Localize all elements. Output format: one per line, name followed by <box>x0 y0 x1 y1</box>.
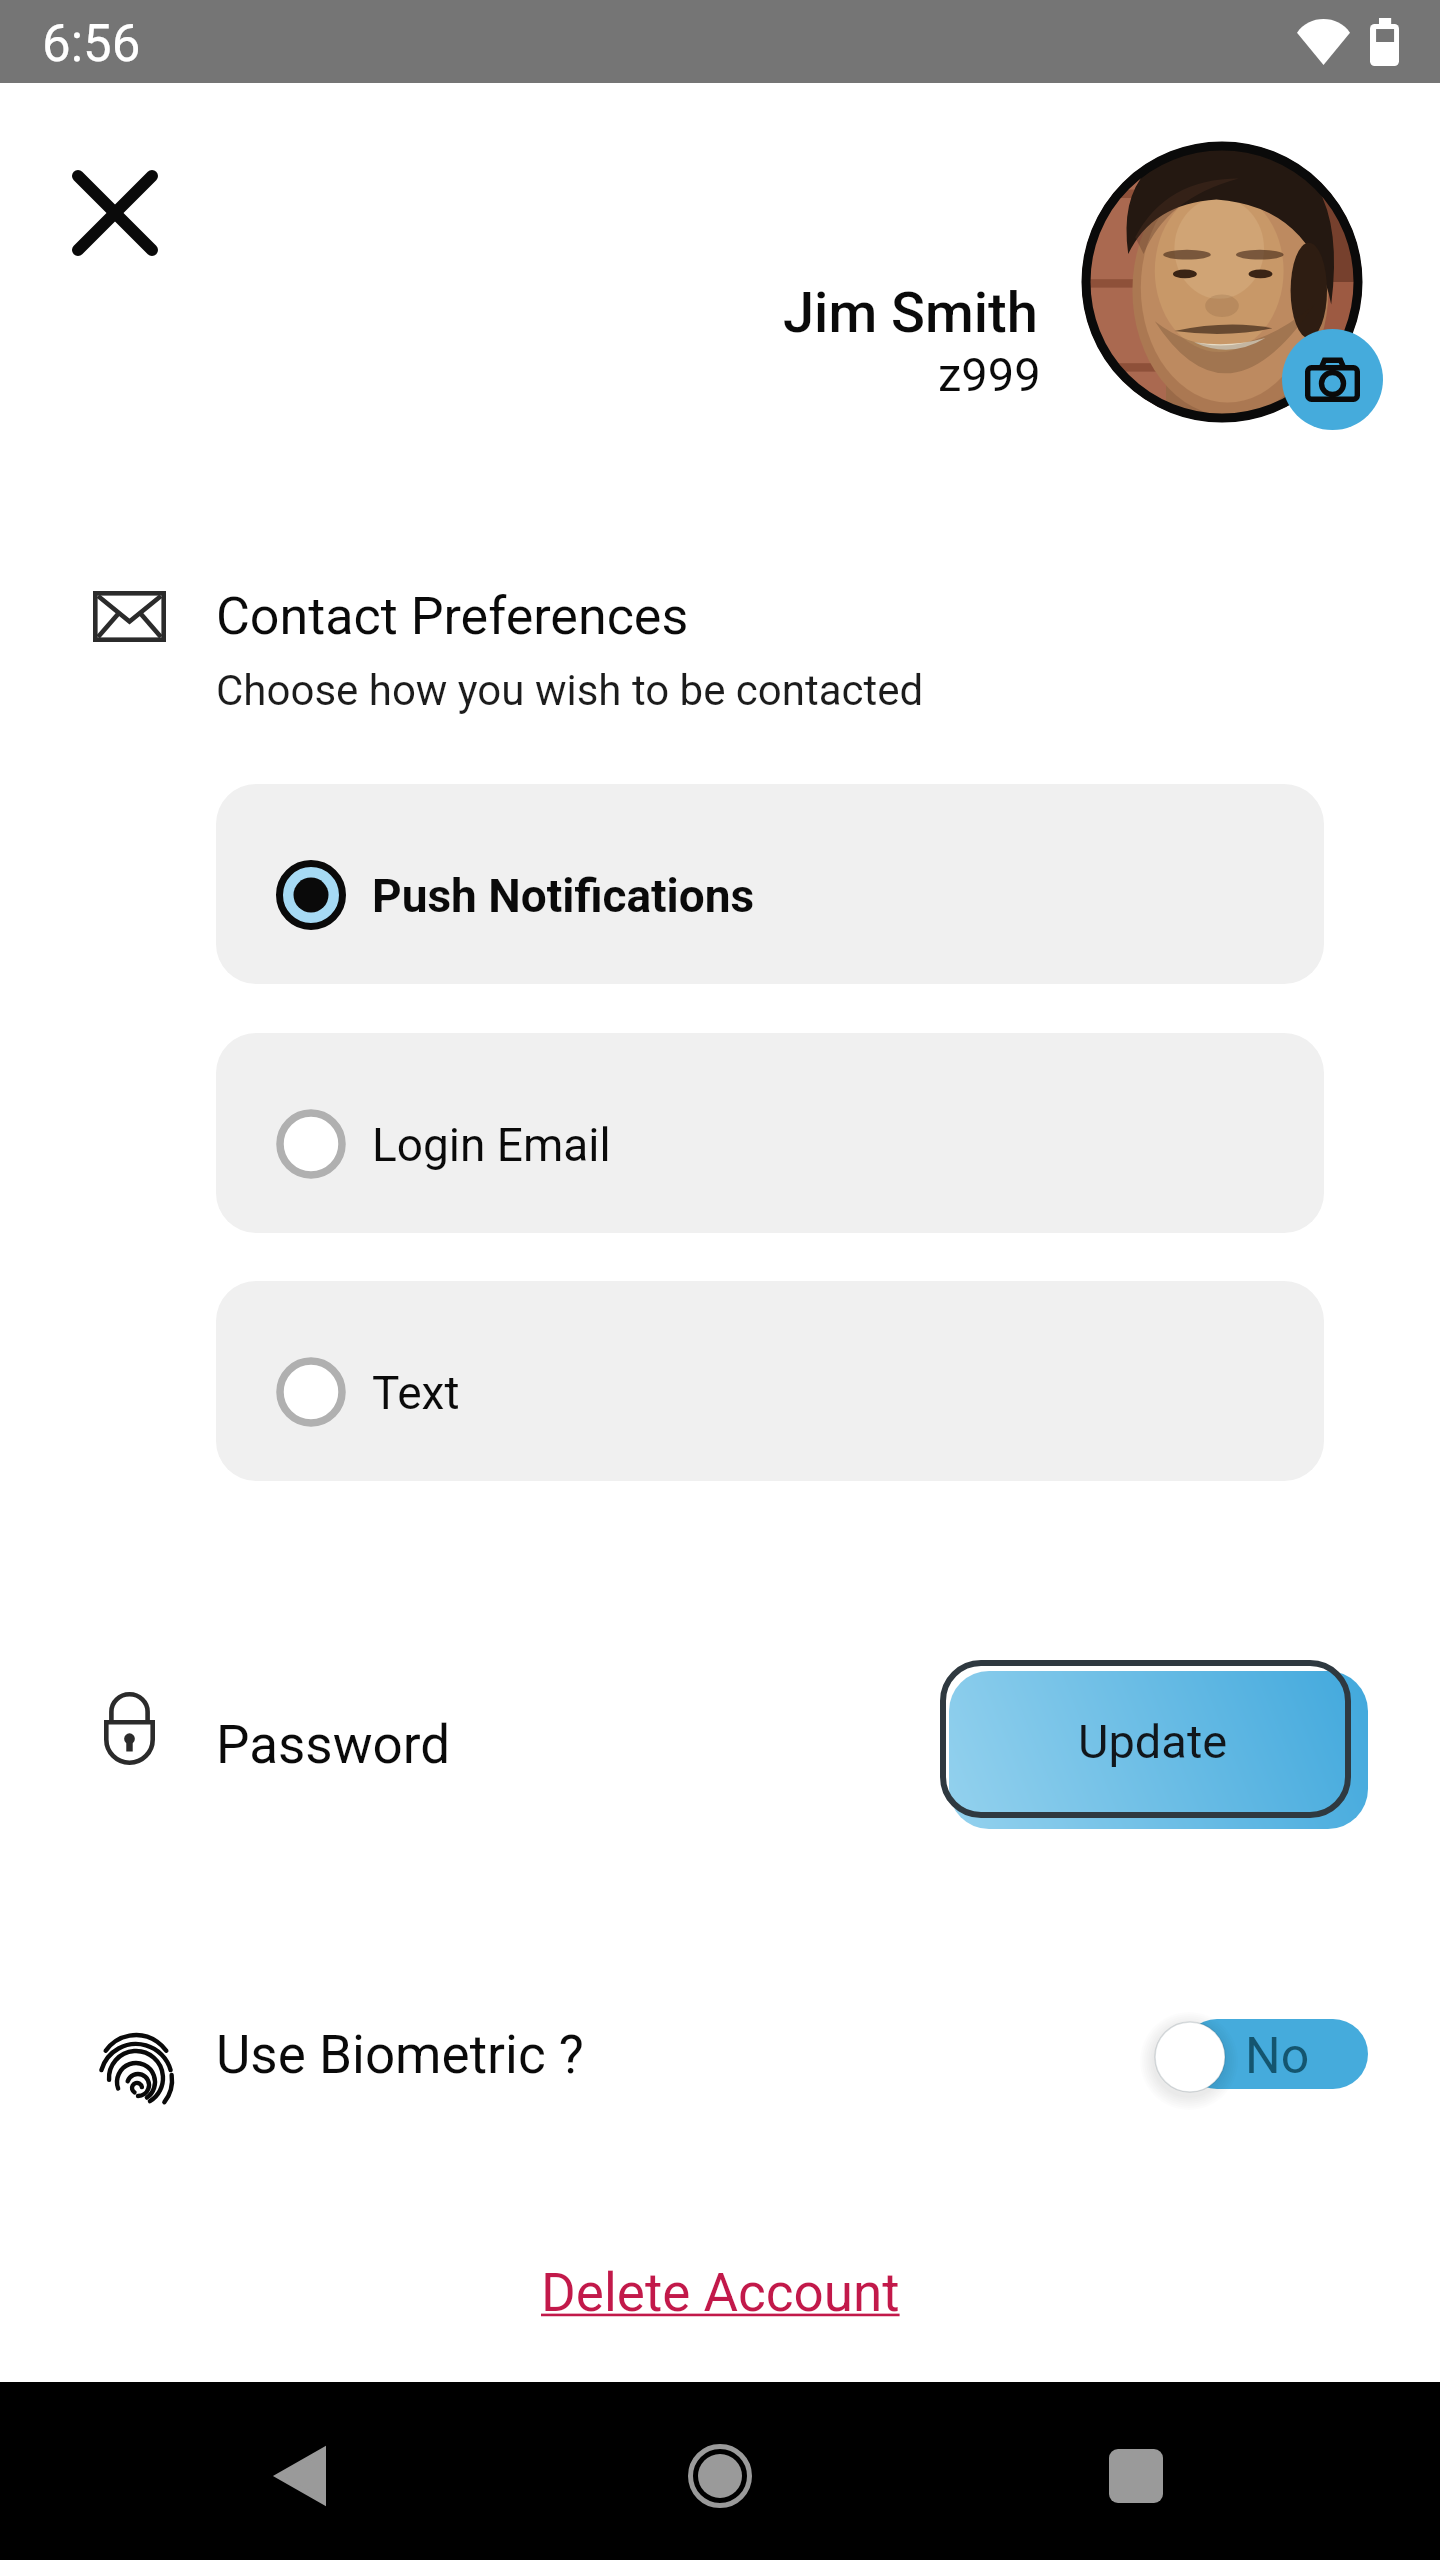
staticText: Push Notifications <box>372 869 755 923</box>
button[interactable]: Close <box>48 146 182 280</box>
button[interactable]: Delete Account <box>541 2262 900 2324</box>
button[interactable]: Home <box>650 2406 790 2546</box>
button[interactable]: Text <box>216 1281 1324 1481</box>
staticText: 6:56 <box>42 14 141 74</box>
staticText: Update <box>1078 1714 1228 1769</box>
staticText: Contact Preferences <box>216 586 689 647</box>
button[interactable]: Recent apps <box>1066 2406 1206 2546</box>
staticText: Jim Smith <box>783 280 1038 346</box>
staticText: Choose how you wish to be contacted <box>216 666 924 715</box>
button[interactable]: No <box>1145 2012 1380 2108</box>
button[interactable]: Push Notifications <box>216 784 1324 984</box>
staticText: Use Biometric ? <box>216 2024 584 2086</box>
staticText: Password <box>216 1714 451 1776</box>
staticText: No <box>1245 2027 1310 2086</box>
staticText: Text <box>372 1366 460 1420</box>
button[interactable]: Back <box>231 2406 371 2546</box>
button[interactable]: Update <box>940 1660 1370 1832</box>
staticText: Login Email <box>372 1118 611 1172</box>
staticText: z999 <box>938 347 1041 402</box>
button[interactable]: Login Email <box>216 1033 1324 1233</box>
button[interactable]: Change profile photo <box>1282 329 1383 430</box>
